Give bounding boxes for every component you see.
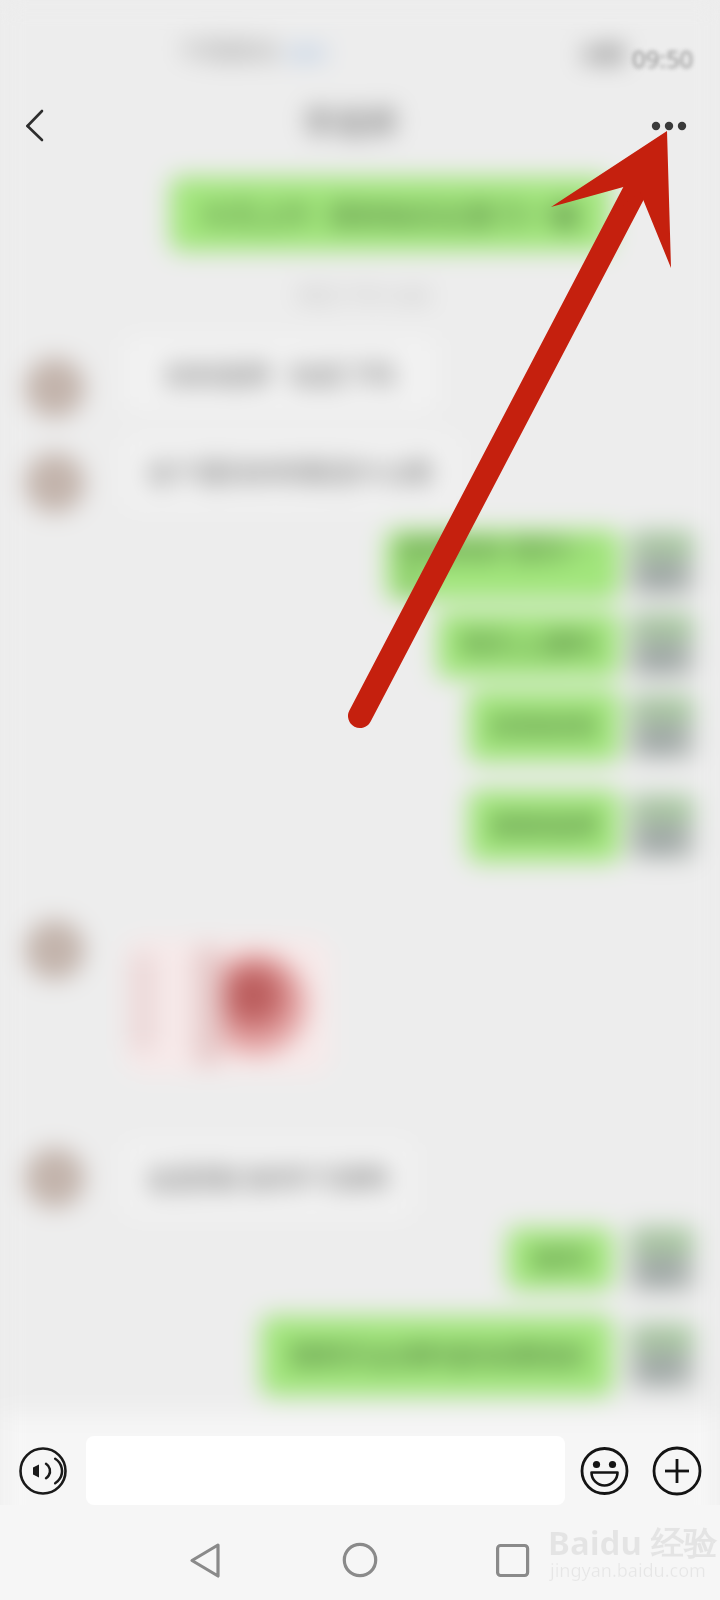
staticText: 这个题目的答案是什么呢 [147, 456, 433, 489]
button[interactable]: Recents [473, 1532, 553, 1600]
staticText: 好的老师 知道了吗 [166, 356, 395, 392]
staticText: 今天上午 讲的知识点复习一遍 [201, 195, 580, 233]
staticText: jingyan.baidu.com [550, 1558, 706, 1583]
button[interactable]: Back [165, 1532, 245, 1600]
staticText: 明天上课吗 [461, 628, 596, 662]
staticText: 老师你好 想问一下 [397, 530, 609, 600]
button[interactable]: Emoji [576, 1442, 634, 1500]
staticText: 收到 [533, 1242, 587, 1276]
button[interactable]: More [648, 1442, 706, 1500]
staticText: 我明天会准时参加课程的 [289, 1339, 586, 1373]
staticText: 这是我们的学习资料 [147, 1162, 390, 1196]
button[interactable]: Voice input [14, 1442, 72, 1500]
staticText: Baidu 经验 [548, 1520, 717, 1565]
staticText: 李老师 [304, 103, 397, 142]
staticText: 中国移动 [182, 36, 278, 66]
button[interactable]: Home [320, 1532, 400, 1600]
staticText: 好的好的 [490, 709, 598, 743]
button[interactable]: Back [8, 96, 72, 160]
staticText: 09:50 [632, 42, 694, 75]
staticText: 谢谢老师 [490, 809, 598, 843]
button[interactable]: More options [640, 96, 704, 160]
